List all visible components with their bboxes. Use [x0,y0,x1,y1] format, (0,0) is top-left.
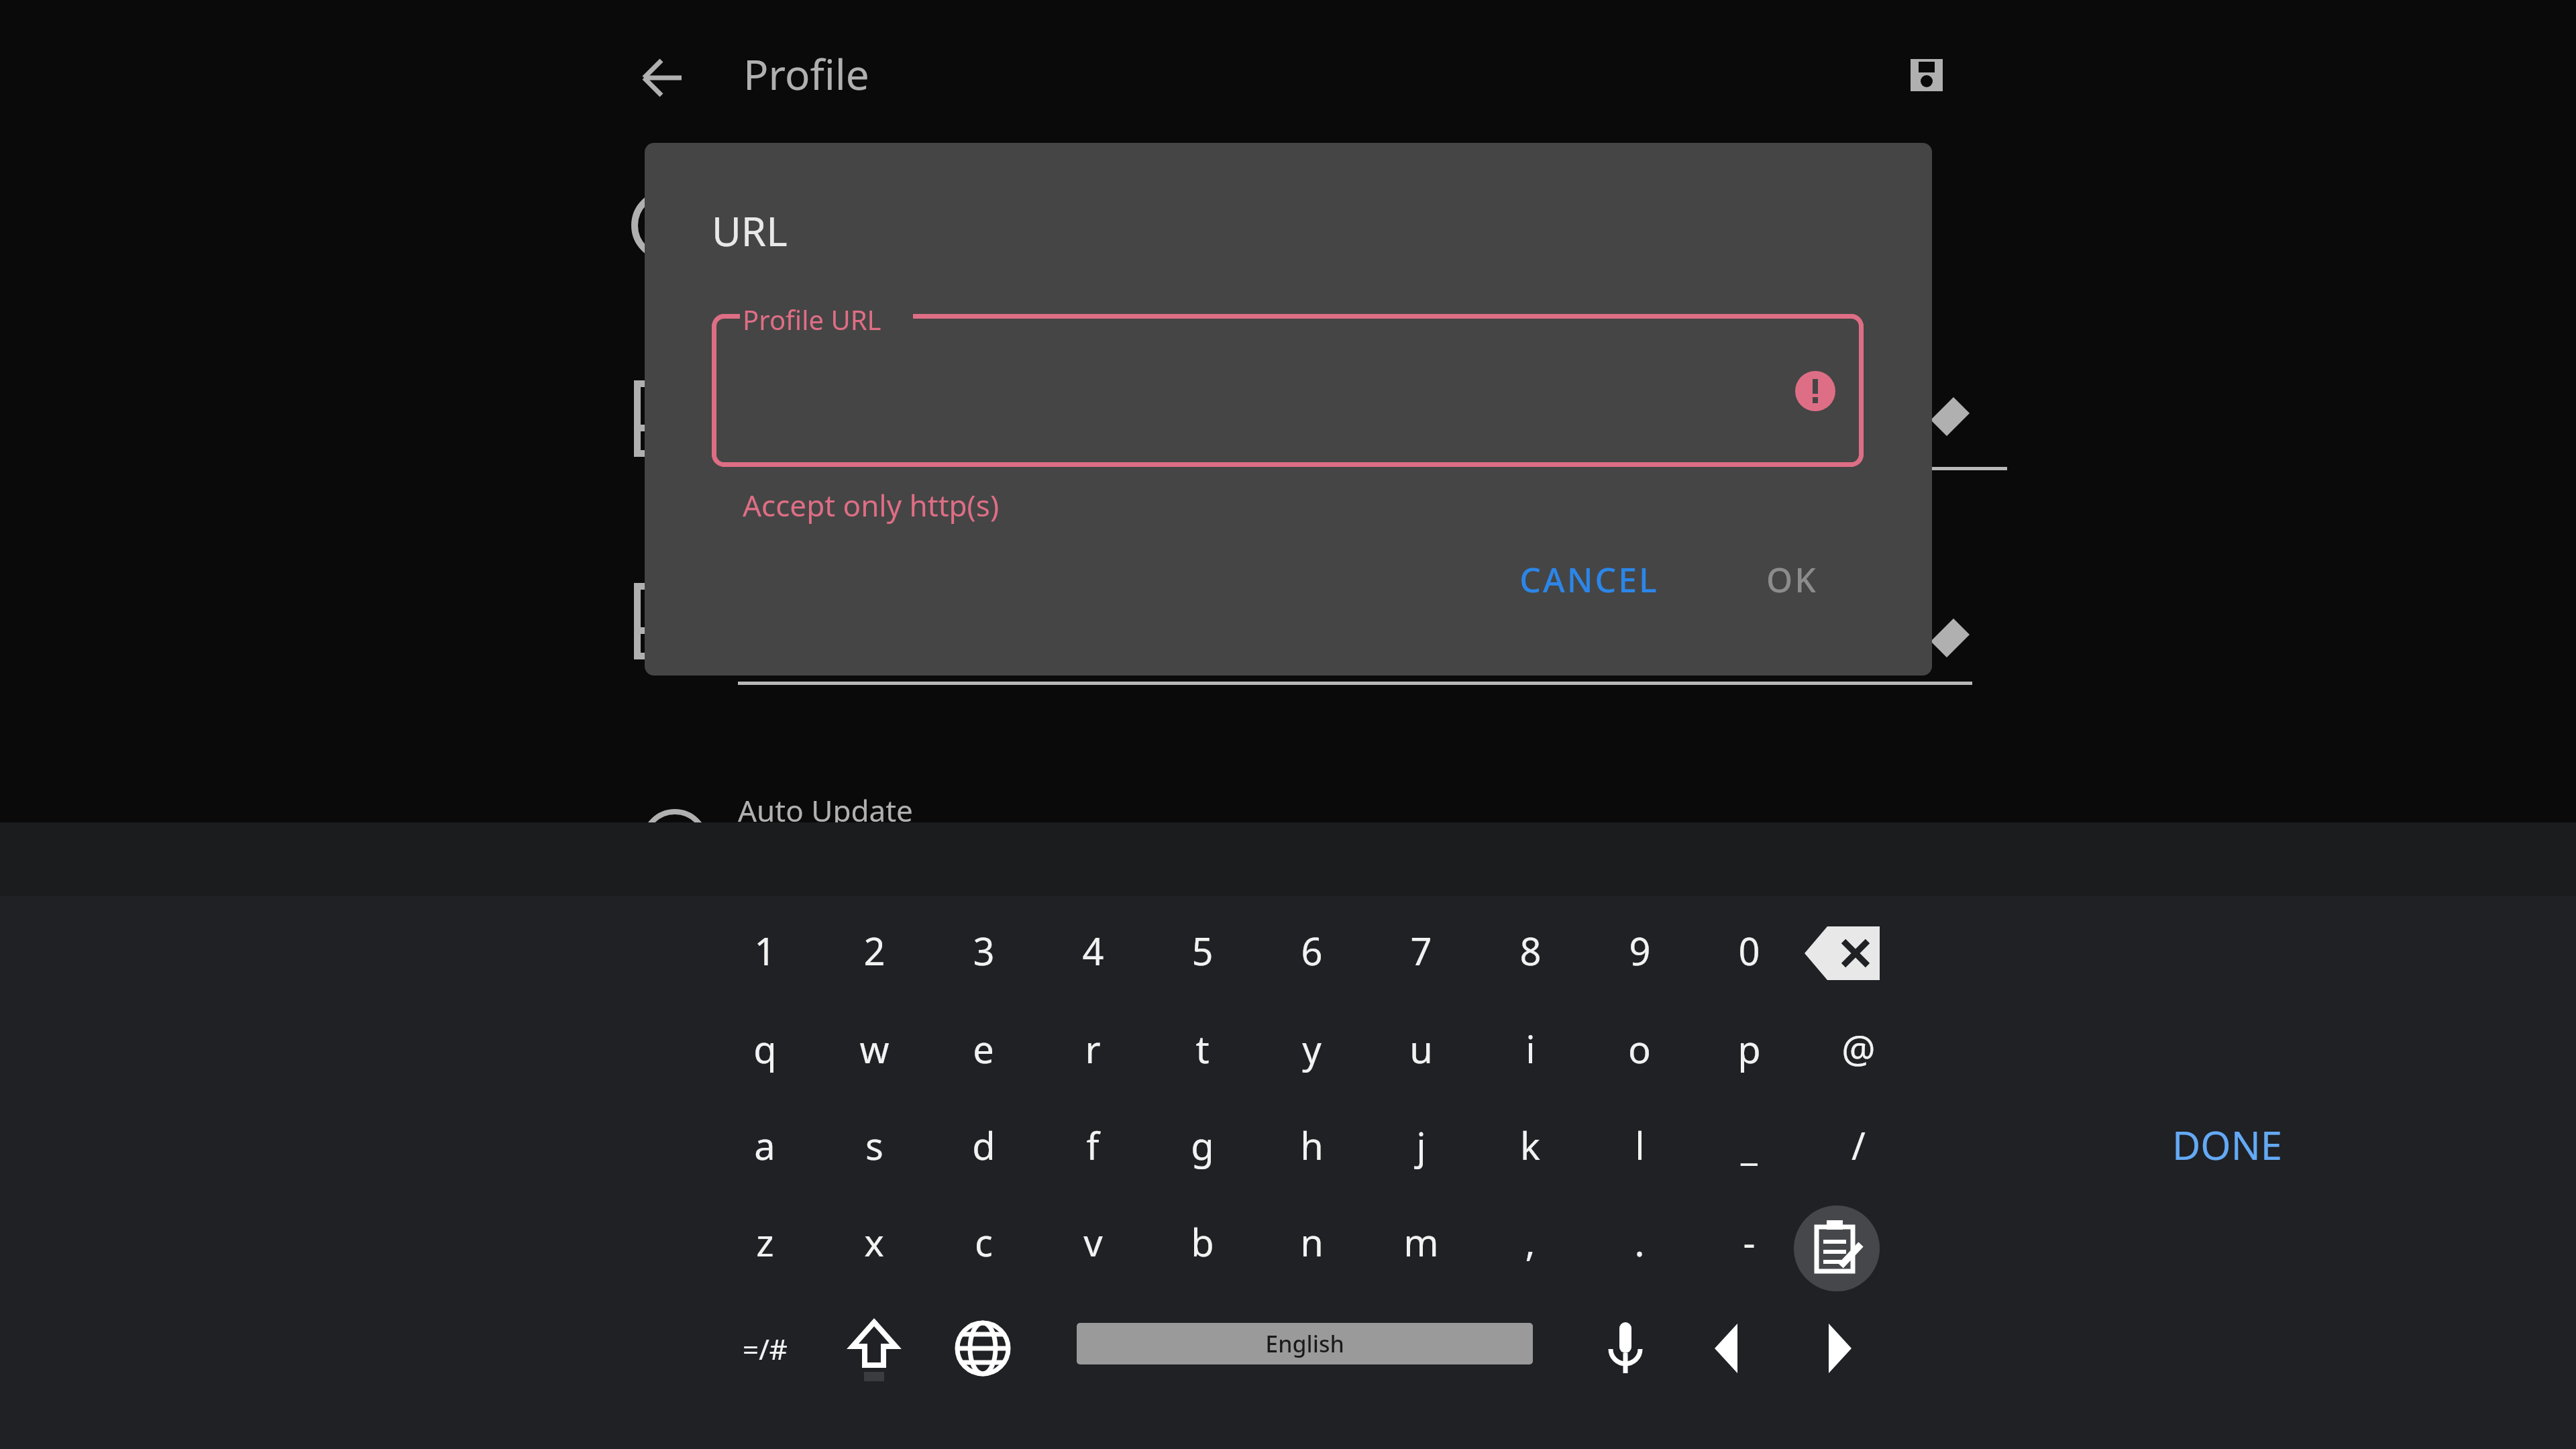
button[interactable]: z [728,1205,802,1279]
button[interactable]: t [1165,1012,1239,1085]
button[interactable]: =/# [728,1311,802,1385]
staticText: y [1302,1023,1322,1074]
staticText: 2 [863,925,885,976]
button[interactable]: w [837,1012,911,1085]
staticText: k [1520,1120,1540,1171]
button[interactable]: s [837,1108,911,1182]
staticText: m [1403,1216,1439,1267]
staticText: x [864,1216,884,1267]
button[interactable]: CANCEL [1489,543,1690,616]
staticText: 0 [1738,925,1760,976]
button[interactable]: Next [1802,1311,1876,1385]
button[interactable]: u [1384,1012,1458,1085]
staticText: @ [1841,1023,1876,1074]
button[interactable]: 7 [1384,914,1458,987]
staticText: 7 [1410,925,1432,976]
staticText: DONE [2172,1118,2282,1171]
button[interactable]: y [1275,1012,1348,1085]
button[interactable]: d [947,1108,1020,1182]
button[interactable] [712,314,1864,467]
staticText: 3 [973,925,995,976]
staticText: English [1265,1328,1344,1359]
button[interactable]: @ [1821,1012,1895,1085]
staticText: v [1083,1216,1103,1267]
button[interactable]: o [1603,1012,1676,1085]
staticText: URL [712,203,788,258]
button[interactable]: DONE [2133,1104,2321,1185]
staticText: q [753,1023,777,1074]
staticText: s [865,1120,883,1171]
staticText: a [754,1120,775,1171]
button[interactable]: f [1056,1108,1130,1182]
staticText: 8 [1519,925,1542,976]
button[interactable]: 4 [1056,914,1130,987]
staticText: f [1086,1120,1099,1171]
staticText: e [973,1023,994,1074]
button[interactable]: Back [631,46,695,110]
button[interactable]: - [1712,1205,1786,1279]
staticText: d [972,1120,996,1171]
button[interactable]: 5 [1165,914,1239,987]
button[interactable]: 3 [947,914,1020,987]
staticText: , [1525,1216,1536,1267]
staticText: r [1085,1023,1101,1074]
staticText: o [1628,1023,1651,1074]
button[interactable] [623,576,723,669]
button[interactable]: e [947,1012,1020,1085]
staticText: Profile URL [743,301,881,337]
staticText: =/# [743,1330,788,1368]
button[interactable]: n [1275,1205,1348,1279]
button[interactable]: / [1821,1108,1895,1182]
button[interactable]: 2 [837,914,911,987]
button[interactable]: _ [1712,1108,1786,1182]
button[interactable]: Backspace [1802,922,1882,984]
button[interactable]: h [1275,1108,1348,1182]
button[interactable]: 1 [728,914,802,987]
button[interactable]: k [1493,1108,1567,1182]
button[interactable]: q [728,1012,802,1085]
button[interactable]: v [1056,1205,1130,1279]
staticText: Profile [743,46,869,102]
button[interactable]: Save [1893,42,1960,109]
button[interactable]: 6 [1275,914,1348,987]
button[interactable]: g [1165,1108,1239,1182]
staticText: - [1743,1216,1756,1267]
staticText: Auto Update [738,790,913,830]
button[interactable]: 9 [1603,914,1676,987]
button[interactable]: Voice input [1589,1311,1662,1385]
staticText: CANCEL [1519,557,1659,602]
button[interactable]: x [837,1205,911,1279]
button[interactable] [623,373,723,467]
button[interactable]: Shift [837,1311,911,1385]
staticText: i [1525,1023,1536,1074]
button[interactable]: 0 [1712,914,1786,987]
button[interactable] [623,180,723,274]
button[interactable]: English [1077,1323,1533,1364]
button[interactable]: Change language [946,1311,1020,1385]
button[interactable]: p [1712,1012,1786,1085]
staticText: 6 [1301,925,1323,976]
button[interactable]: OK [1718,543,1866,616]
button[interactable]: b [1165,1205,1239,1279]
button[interactable]: r [1056,1012,1130,1085]
staticText: 1 [754,925,776,976]
staticText: z [756,1216,774,1267]
button[interactable]: 8 [1493,914,1567,987]
button[interactable]: m [1384,1205,1458,1279]
staticText: h [1300,1120,1324,1171]
staticText: c [975,1216,993,1267]
button[interactable]: . [1603,1205,1676,1279]
button[interactable]: a [728,1108,802,1182]
button[interactable]: Previous [1690,1311,1764,1385]
button[interactable]: , [1493,1205,1567,1279]
button[interactable]: c [947,1205,1020,1279]
staticText: 9 [1629,925,1651,976]
button[interactable]: l [1603,1108,1676,1182]
button[interactable]: i [1493,1012,1567,1085]
staticText: p [1737,1023,1761,1074]
button[interactable]: Enter [1794,1205,1880,1291]
staticText: 4 [1082,925,1104,976]
staticText: j [1416,1120,1426,1171]
staticText: b [1191,1216,1214,1267]
button[interactable]: j [1384,1108,1458,1182]
